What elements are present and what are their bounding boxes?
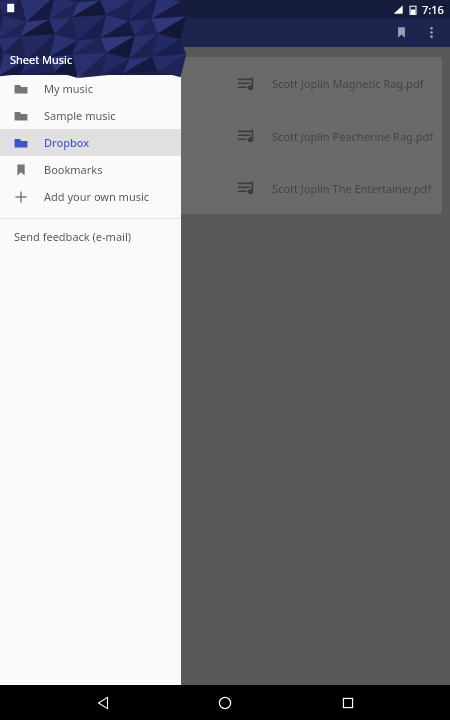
staticText: Scott Joplin The Entertainer.pdf: [272, 181, 432, 196]
button[interactable]: More options: [416, 18, 446, 47]
staticText: Sheet Music: [10, 52, 73, 67]
staticText: Scott Joplin Peacherine Rag.pdf: [272, 129, 434, 144]
staticText: My music: [44, 81, 93, 96]
staticText: 7:16: [422, 2, 444, 17]
button[interactable]: Scott Joplin Peacherine Rag.pdf: [8, 110, 442, 162]
button[interactable]: Dropbox: [0, 129, 181, 156]
staticText: Scott Joplin The Entertainer.pdf: [12, 181, 172, 196]
button[interactable]: Scott Joplin The Entertainer.pdf: [8, 162, 442, 214]
button[interactable]: Add your own music: [0, 183, 181, 210]
button[interactable]: Sample music: [0, 102, 181, 129]
button[interactable]: My music: [0, 75, 181, 102]
staticText: Send feedback (e-mail): [14, 229, 132, 244]
staticText: Bookmarks: [44, 162, 103, 177]
button[interactable]: Back: [83, 685, 123, 720]
button[interactable]: Send feedback (e-mail): [0, 219, 181, 254]
button[interactable]: Home: [205, 685, 245, 720]
button[interactable]: Scott Joplin Magnetic Rag.pdf: [8, 57, 442, 110]
staticText: Scott Joplin Magnetic Rag.pdf: [12, 76, 164, 91]
staticText: Dropbox: [44, 135, 90, 150]
staticText: Scott Joplin Peacherine Rag.pdf: [12, 129, 174, 144]
staticText: Scott Joplin Magnetic Rag.pdf: [272, 76, 424, 91]
button[interactable]: Recents: [328, 685, 368, 720]
staticText: Add your own music: [44, 189, 150, 204]
button[interactable]: Bookmarks: [386, 18, 416, 47]
staticText: Sample music: [44, 108, 116, 123]
button[interactable]: Bookmarks: [0, 156, 181, 183]
